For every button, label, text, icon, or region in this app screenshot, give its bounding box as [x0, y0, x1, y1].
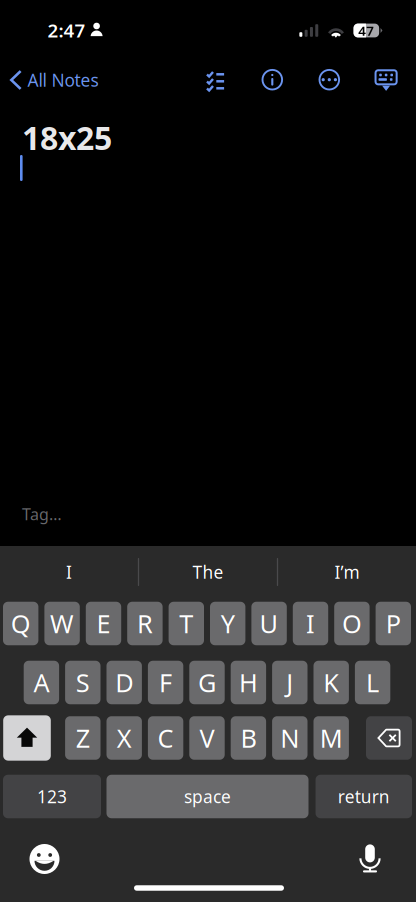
staticText: The — [192, 560, 223, 583]
staticText: Tag… — [22, 503, 62, 525]
button[interactable]: return — [316, 775, 412, 818]
button[interactable]: I — [0, 546, 138, 598]
staticText: return — [338, 785, 390, 808]
staticText: U — [260, 607, 279, 640]
staticText: I’m — [334, 560, 359, 583]
staticText: H — [239, 666, 258, 699]
button[interactable]: D — [106, 661, 142, 704]
staticText: M — [320, 721, 343, 755]
button[interactable]: space — [106, 775, 308, 818]
button[interactable]: Dictation — [347, 837, 393, 881]
button[interactable]: U — [251, 602, 287, 645]
button[interactable]: N — [272, 716, 307, 760]
staticText: space — [184, 785, 231, 808]
staticText: B — [240, 721, 256, 755]
staticText: R — [137, 607, 153, 640]
button[interactable]: J — [272, 661, 307, 704]
staticText: W — [50, 607, 74, 640]
button[interactable]: R — [127, 602, 163, 645]
staticText: O — [342, 607, 362, 640]
staticText: L — [366, 666, 379, 699]
button[interactable]: T — [169, 602, 204, 645]
button[interactable]: E — [86, 602, 121, 645]
button[interactable]: Y — [210, 602, 245, 645]
staticText: S — [76, 666, 90, 699]
button[interactable]: I — [293, 602, 328, 645]
button[interactable]: M — [313, 716, 349, 760]
button[interactable]: I’m — [278, 546, 416, 598]
button[interactable]: P — [376, 602, 411, 645]
staticText: E — [96, 607, 110, 640]
staticText: C — [158, 721, 174, 755]
staticText: I — [306, 607, 315, 640]
button[interactable]: K — [313, 661, 349, 704]
staticText: K — [323, 666, 339, 699]
staticText: Y — [221, 607, 235, 640]
button[interactable]: More — [307, 58, 351, 102]
button[interactable]: All Notes — [10, 58, 150, 102]
button[interactable]: The — [139, 546, 277, 598]
staticText: X — [117, 721, 132, 755]
button[interactable]: L — [355, 661, 390, 704]
button[interactable]: Shift — [3, 715, 51, 761]
staticText: J — [286, 666, 293, 699]
button[interactable]: W — [44, 602, 80, 645]
staticText: 18x25 — [22, 116, 112, 159]
button[interactable]: H — [231, 661, 266, 704]
staticText: T — [179, 607, 193, 640]
button[interactable]: C — [148, 716, 183, 760]
staticText: A — [33, 666, 49, 699]
button[interactable]: B — [231, 716, 266, 760]
button[interactable]: S — [65, 661, 100, 704]
button[interactable]: G — [189, 661, 225, 704]
button[interactable]: V — [189, 716, 225, 760]
button[interactable]: Delete — [366, 716, 412, 760]
staticText: All Notes — [27, 68, 98, 91]
button[interactable]: O — [334, 602, 370, 645]
button[interactable]: Checklist — [193, 57, 237, 101]
staticText: G — [198, 666, 216, 699]
button[interactable]: 123 — [3, 775, 101, 818]
button[interactable]: F — [148, 661, 183, 704]
staticText: N — [280, 721, 299, 755]
button[interactable]: Emoji — [21, 837, 67, 881]
staticText: 123 — [37, 785, 67, 808]
staticText: 47 — [358, 22, 374, 39]
button[interactable]: A — [24, 661, 59, 704]
button[interactable]: Z — [65, 716, 100, 760]
button[interactable]: X — [106, 716, 142, 760]
staticText: V — [199, 721, 214, 755]
staticText: Z — [76, 721, 90, 755]
staticText: Q — [11, 607, 31, 640]
staticText: P — [386, 607, 401, 640]
button[interactable]: Q — [3, 602, 38, 645]
staticText: 2:47 — [47, 18, 85, 43]
staticText: D — [115, 666, 133, 699]
button[interactable]: Hide keyboard — [364, 58, 408, 102]
staticText: I — [66, 560, 72, 583]
button[interactable]: Info — [250, 58, 294, 102]
staticText: F — [159, 666, 172, 699]
